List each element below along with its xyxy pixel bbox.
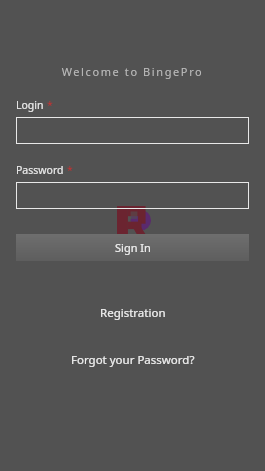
staticText: Welcome to BingePro	[0, 64, 265, 79]
staticText: Login	[16, 98, 44, 112]
other: BingePro logo	[117, 206, 151, 240]
staticText: Forgot your Password?	[71, 352, 195, 368]
button[interactable]: Registration	[0, 305, 265, 321]
button[interactable]	[16, 117, 249, 144]
button[interactable]	[16, 182, 249, 209]
button[interactable]: Forgot your Password?	[0, 352, 265, 368]
staticText: Password	[16, 163, 64, 177]
button[interactable]: Sign In	[16, 234, 249, 261]
staticText: Sign In	[115, 240, 151, 255]
staticText: *	[67, 163, 73, 177]
staticText: Registration	[100, 305, 166, 321]
staticText: *	[47, 98, 53, 112]
